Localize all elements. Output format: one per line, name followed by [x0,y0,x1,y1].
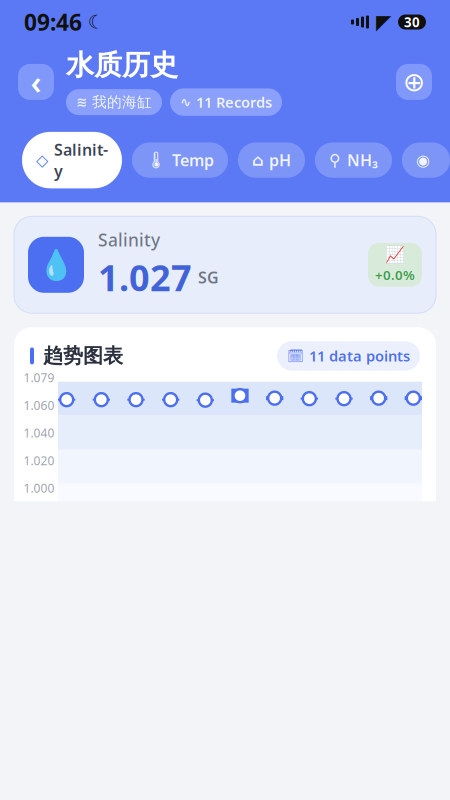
staticText: SG [198,267,219,288]
staticText: ☾ [82,11,105,33]
staticText: 趋势图表 [43,344,123,368]
staticText: ◉ [416,151,430,169]
staticText: ≋ [76,95,87,110]
button[interactable]: ◉ [402,142,450,178]
staticText: ⊕ [403,67,425,97]
staticText: ⌂ [252,151,263,169]
staticText: 11 data points [309,346,410,366]
staticText: Salinity [98,228,160,251]
staticText: 🌡 [146,151,166,169]
staticText: +0.0% [375,266,415,284]
staticText: 1.040 [23,425,54,441]
staticText: ◤ [376,11,391,33]
staticText: 1.079 [23,370,54,386]
staticText: ‹ [30,61,41,103]
staticText: pH [269,149,291,171]
staticText: 1.060 [23,397,54,413]
staticText: ∿ [180,95,191,110]
staticText: 11 Records [196,92,272,112]
staticText: 水质历史 [66,48,178,82]
button[interactable]: ⌂ [238,142,305,178]
button[interactable]: ◇ [22,132,122,188]
staticText: ⚲ [329,151,341,169]
button[interactable]: Back [18,64,54,100]
staticText: 我的海缸 [92,93,152,111]
staticText: Salinity [54,139,108,181]
staticText: 30 [404,13,420,31]
button[interactable]: ⚲ [315,142,392,178]
staticText: 1.027 [98,253,192,301]
button[interactable]: 🌡 [132,142,228,178]
staticText: 09:46 [24,7,82,37]
staticText: 📈 [385,246,405,264]
staticText: 💧 [37,248,74,281]
staticText: 1.000 [23,480,54,496]
staticText: Temp [172,149,214,171]
staticText: 1.020 [23,453,54,468]
staticText: ◇ [36,151,48,169]
staticText: 🗓 [287,348,304,363]
button[interactable]: Add record [396,64,432,100]
staticText: NH₃ [347,149,378,171]
